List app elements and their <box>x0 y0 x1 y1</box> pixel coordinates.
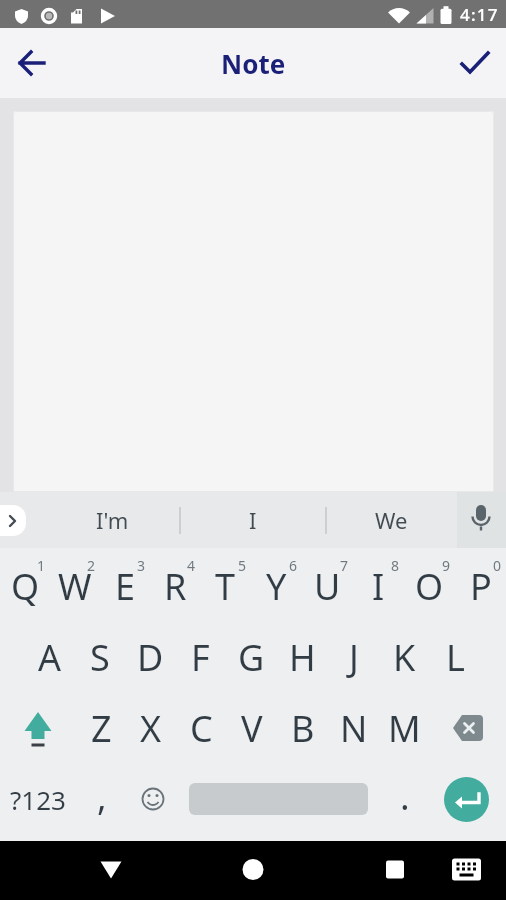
button[interactable] <box>457 492 506 548</box>
staticText: 3 <box>137 556 146 575</box>
staticText: Q <box>11 562 40 611</box>
button[interactable] <box>8 39 56 87</box>
button[interactable]: D <box>125 622 175 692</box>
staticText: 0 <box>493 556 502 575</box>
staticText: X <box>140 704 162 753</box>
staticText: 8 <box>391 556 400 575</box>
button[interactable]: Q <box>0 551 50 621</box>
staticText: Y <box>266 562 287 611</box>
button[interactable]: K <box>379 622 430 692</box>
staticText: F <box>191 633 210 682</box>
staticText: D <box>137 633 164 682</box>
button[interactable]: Y <box>251 551 302 621</box>
button[interactable]: O <box>404 551 455 621</box>
staticText: 4 <box>187 556 196 575</box>
button[interactable] <box>436 841 506 900</box>
button[interactable]: W <box>50 551 100 621</box>
staticText: W <box>58 562 92 611</box>
button[interactable]: L <box>430 622 481 692</box>
staticText: B <box>291 704 315 753</box>
staticText: O <box>415 562 444 611</box>
staticText: T <box>215 562 236 611</box>
staticText: I'm <box>96 505 129 535</box>
button[interactable]: N <box>328 693 379 763</box>
button[interactable] <box>451 39 499 87</box>
staticText: 2 <box>87 556 96 575</box>
staticText: ?123 <box>10 782 66 817</box>
button[interactable]: X <box>126 693 176 763</box>
button[interactable]: V <box>226 693 277 763</box>
staticText: I <box>372 562 385 611</box>
staticText: P <box>470 562 492 611</box>
button[interactable]: E <box>100 551 150 621</box>
button[interactable]: I <box>180 492 326 548</box>
button[interactable]: , <box>76 764 127 834</box>
staticText: N <box>340 704 368 753</box>
button[interactable]: ?123 <box>0 764 76 834</box>
button[interactable]: . <box>379 764 430 834</box>
button[interactable] <box>0 505 26 536</box>
staticText: K <box>393 633 416 682</box>
button[interactable]: P <box>455 551 506 621</box>
button[interactable]: I <box>353 551 404 621</box>
staticText: . <box>400 772 410 821</box>
staticText: 6 <box>289 556 298 575</box>
staticText: V <box>241 704 263 753</box>
staticText: I <box>249 505 257 535</box>
staticText: 5 <box>238 556 247 575</box>
button[interactable]: M <box>379 693 430 763</box>
staticText: 7 <box>340 556 349 575</box>
button[interactable] <box>291 841 436 900</box>
staticText: Z <box>91 704 112 753</box>
staticText: J <box>349 633 359 682</box>
staticText: H <box>289 633 316 682</box>
button[interactable]: B <box>277 693 328 763</box>
button[interactable]: R <box>150 551 200 621</box>
staticText: R <box>164 562 187 611</box>
staticText: A <box>38 633 62 682</box>
staticText: E <box>115 562 136 611</box>
staticText: 1 <box>37 556 46 575</box>
staticText: U <box>314 562 341 611</box>
staticText: We <box>375 505 408 535</box>
button[interactable] <box>430 693 506 763</box>
button[interactable] <box>146 841 291 900</box>
button[interactable]: G <box>226 622 277 692</box>
button[interactable]: We <box>326 492 457 548</box>
staticText: Note <box>221 46 286 81</box>
staticText: L <box>446 633 465 682</box>
button[interactable]: H <box>277 622 328 692</box>
button[interactable]: F <box>175 622 226 692</box>
staticText: 4:17 <box>460 3 499 26</box>
staticText: , <box>97 772 107 821</box>
button[interactable]: S <box>75 622 125 692</box>
button[interactable] <box>0 841 146 900</box>
button[interactable]: Z <box>76 693 126 763</box>
button[interactable]: J <box>328 622 379 692</box>
staticText: M <box>388 704 421 753</box>
button[interactable]: C <box>176 693 226 763</box>
button[interactable]: I'm <box>44 492 180 548</box>
button[interactable]: A <box>25 622 75 692</box>
button[interactable] <box>127 764 178 834</box>
button[interactable]: T <box>200 551 251 621</box>
staticText: S <box>90 633 110 682</box>
staticText: 9 <box>442 556 451 575</box>
button[interactable] <box>444 777 489 822</box>
staticText: G <box>238 633 265 682</box>
button[interactable]: U <box>302 551 353 621</box>
button[interactable] <box>0 693 76 763</box>
staticText: C <box>190 704 213 753</box>
